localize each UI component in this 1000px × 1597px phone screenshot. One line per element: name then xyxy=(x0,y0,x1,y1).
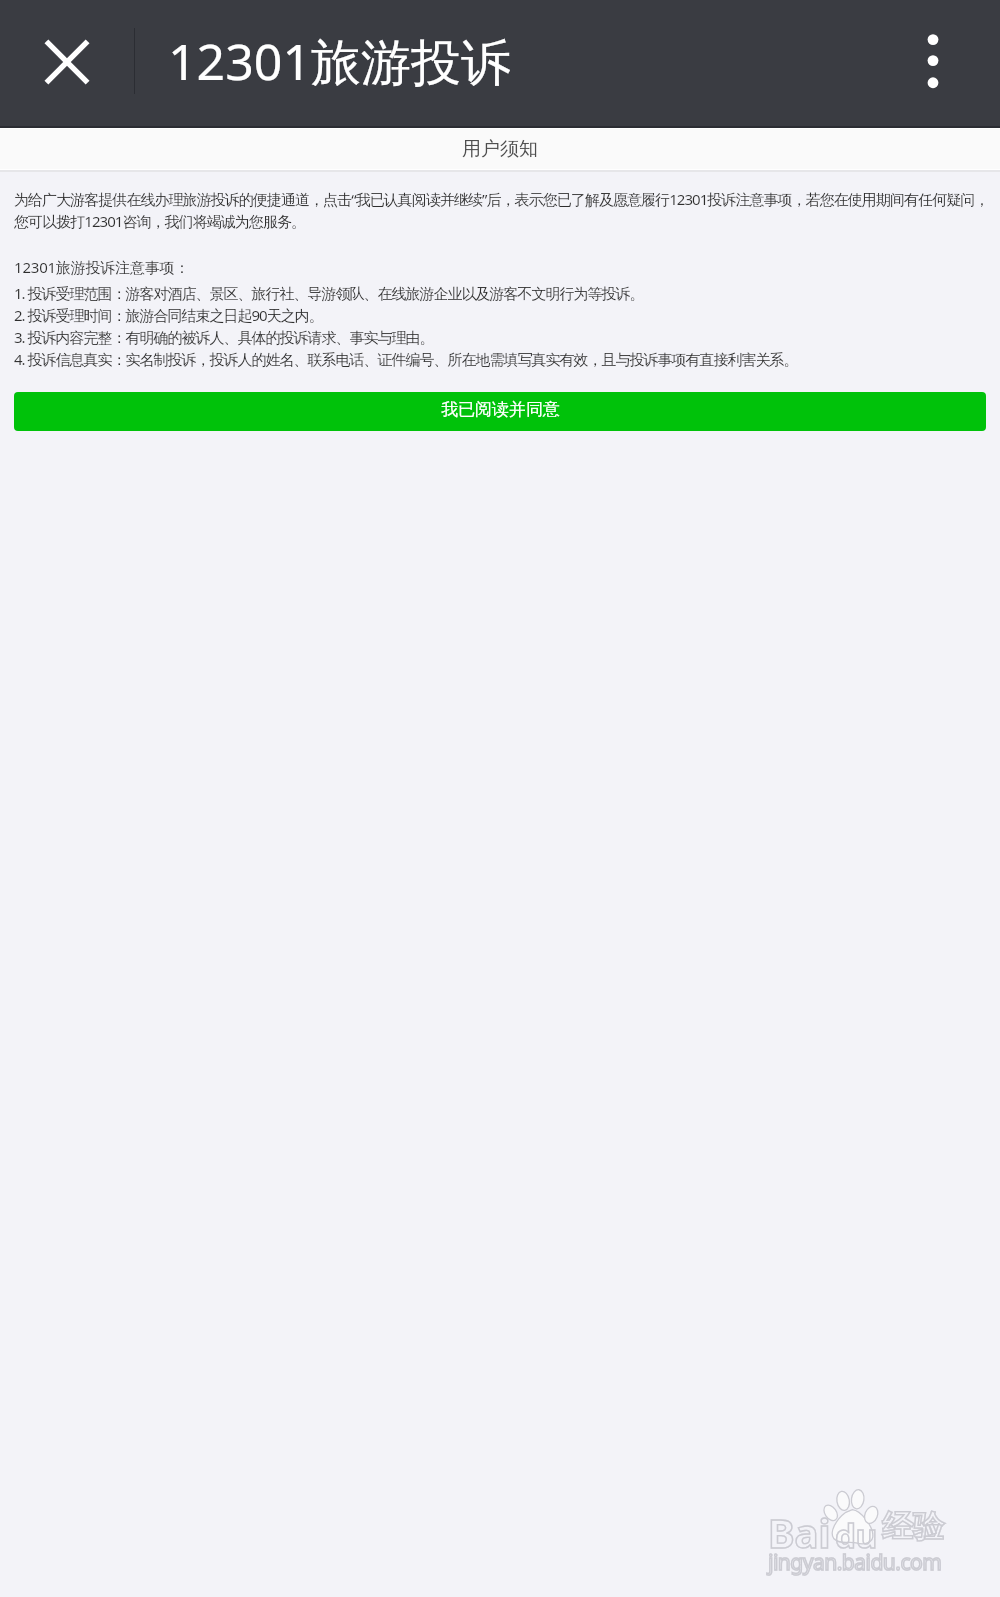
staticText: 4. 投诉信息真实：实名制投诉，投诉人的姓名、联系电话、证件编号、所在地需填写真… xyxy=(14,349,798,369)
staticText: 您可以拨打12301咨询，我们将竭诚为您服务。 xyxy=(14,211,306,231)
staticText: jingyan.baidu.com xyxy=(768,1548,942,1577)
button[interactable]: More options xyxy=(881,0,985,126)
staticText: Bai xyxy=(768,1505,831,1559)
staticText: 为给广大游客提供在线办理旅游投诉的便捷通道，点击“我已认真阅读并继续”后，表示您… xyxy=(14,189,989,209)
button[interactable]: 我已阅读并同意 xyxy=(14,392,986,431)
staticText: 12301旅游投诉 xyxy=(168,27,511,95)
staticText: 我已阅读并同意 xyxy=(441,399,560,420)
staticText: 2. 投诉受理时间：旅游合同结束之日起90天之内。 xyxy=(14,305,323,325)
staticText: 1. 投诉受理范围：游客对酒店、景区、旅行社、导游领队、在线旅游企业以及游客不文… xyxy=(14,283,644,303)
staticText: 经验 xyxy=(882,1507,944,1546)
staticText: du xyxy=(835,1513,878,1558)
staticText: 3. 投诉内容完整：有明确的被诉人、具体的投诉请求、事实与理由。 xyxy=(14,327,434,347)
button[interactable]: Close xyxy=(0,0,134,126)
staticText: 用户须知 xyxy=(462,137,538,161)
staticText: 12301旅游投诉注意事项： xyxy=(14,257,190,277)
